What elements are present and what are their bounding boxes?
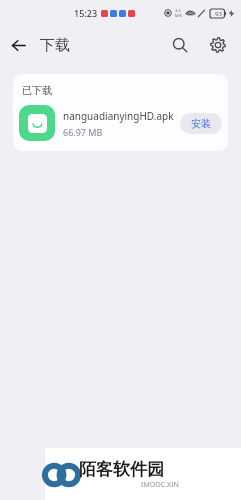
staticText: 15:23	[74, 7, 98, 19]
staticText: 93	[215, 10, 222, 18]
button[interactable]: Search	[161, 26, 199, 64]
staticText: 下载	[40, 36, 70, 55]
staticText: 已下载	[22, 84, 52, 97]
button[interactable]: Back	[0, 27, 36, 63]
staticText: nanguadianyingHD.apk	[63, 109, 174, 123]
staticText: 陌客软件园	[79, 459, 164, 480]
staticText: 3.3 M/S	[175, 8, 183, 18]
staticText: 安装	[191, 117, 211, 130]
staticText: 66.97 MB	[63, 126, 103, 138]
button[interactable]: Settings	[199, 26, 237, 64]
staticText: IMOOC.XIN	[79, 480, 241, 490]
button[interactable]: 安装	[180, 113, 222, 134]
button[interactable]: nanguadianyingHD.apk	[19, 105, 222, 141]
